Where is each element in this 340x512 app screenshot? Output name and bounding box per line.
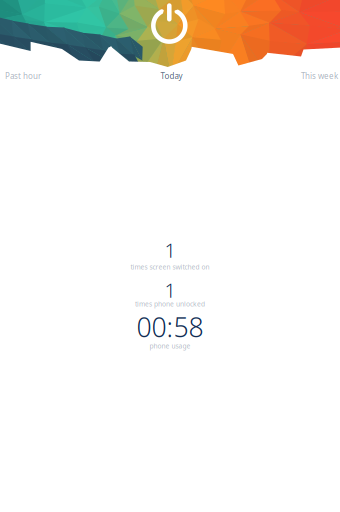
- staticText: 1: [164, 277, 175, 303]
- button[interactable]: Past hour: [0, 68, 110, 84]
- staticText: 1: [164, 237, 175, 263]
- staticText: 00:58: [136, 309, 203, 345]
- staticText: phone usage: [149, 342, 190, 350]
- button[interactable]: Today: [141, 68, 201, 84]
- button[interactable]: This week: [233, 68, 340, 84]
- staticText: Past hour: [5, 71, 41, 81]
- staticText: Today: [160, 71, 182, 81]
- staticText: This week: [301, 71, 338, 81]
- staticText: times phone unlocked: [135, 300, 205, 308]
- staticText: times screen switched on: [130, 263, 209, 271]
